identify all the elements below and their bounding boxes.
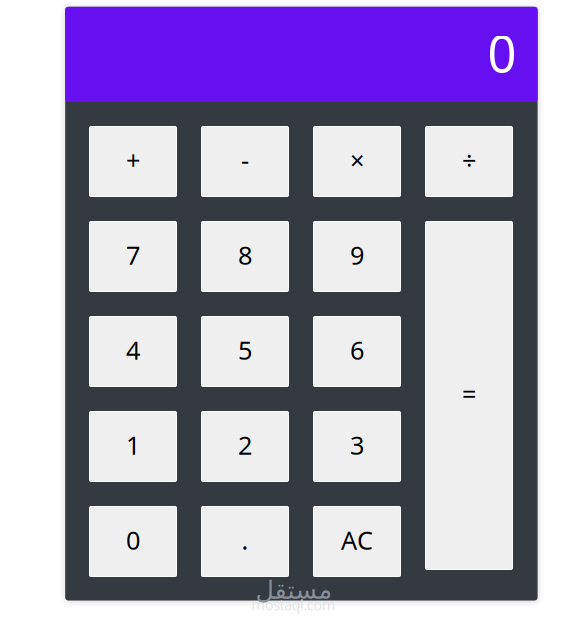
button[interactable]: Decimal point bbox=[201, 506, 288, 576]
button[interactable]: Multiply bbox=[313, 126, 400, 196]
staticText: - bbox=[241, 143, 249, 177]
button[interactable]: 9 bbox=[313, 221, 400, 291]
staticText: 4 bbox=[126, 333, 140, 367]
staticText: 9 bbox=[350, 238, 364, 272]
button[interactable]: Add bbox=[89, 126, 176, 196]
staticText: . bbox=[241, 523, 248, 557]
staticText: 8 bbox=[238, 238, 252, 272]
button[interactable]: 6 bbox=[313, 316, 400, 386]
button[interactable]: 0 bbox=[89, 506, 176, 576]
button[interactable]: Subtract bbox=[201, 126, 288, 196]
staticText: 6 bbox=[350, 333, 364, 367]
staticText: 7 bbox=[126, 238, 140, 272]
staticText: ÷ bbox=[462, 143, 476, 177]
staticText: 3 bbox=[350, 428, 364, 462]
button[interactable]: 4 bbox=[89, 316, 176, 386]
button[interactable]: 2 bbox=[201, 411, 288, 481]
button[interactable]: Divide bbox=[425, 126, 512, 196]
staticText: AC bbox=[341, 523, 373, 557]
staticText: 0 bbox=[488, 19, 517, 87]
button[interactable]: 8 bbox=[201, 221, 288, 291]
button[interactable]: 5 bbox=[201, 316, 288, 386]
staticText: = bbox=[462, 377, 476, 411]
staticText: 0 bbox=[126, 523, 140, 557]
staticText: × bbox=[350, 143, 364, 177]
button[interactable]: All clear bbox=[313, 506, 400, 576]
staticText: + bbox=[126, 143, 140, 177]
button[interactable]: Equals bbox=[425, 221, 512, 569]
staticText: 1 bbox=[126, 428, 140, 462]
button[interactable]: 7 bbox=[89, 221, 176, 291]
staticText: mostaql.com bbox=[251, 595, 336, 614]
button[interactable]: 3 bbox=[313, 411, 400, 481]
staticText: 5 bbox=[238, 333, 252, 367]
button[interactable]: 1 bbox=[89, 411, 176, 481]
staticText: 2 bbox=[238, 428, 252, 462]
staticText: مستقل bbox=[255, 576, 332, 604]
